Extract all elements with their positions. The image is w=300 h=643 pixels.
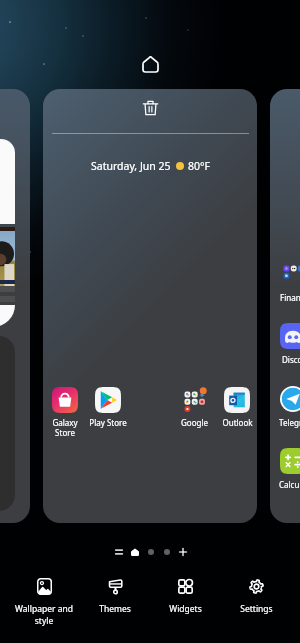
staticText: 80°F [188, 159, 210, 173]
button[interactable]: Calcula [271, 448, 300, 490]
button[interactable]: Remove page [43, 89, 257, 523]
button[interactable]: Financ [270, 89, 300, 523]
staticText: Disco [282, 354, 300, 365]
staticText: Google [181, 417, 208, 428]
button[interactable]: All pages [111, 544, 126, 559]
staticText: Financ [280, 292, 300, 303]
button[interactable]: Financ [271, 261, 300, 303]
button[interactable] [0, 89, 30, 523]
staticText: Wallpaper and style [15, 603, 73, 627]
button[interactable]: Page 3 [159, 544, 174, 559]
button[interactable]: Play Store [88, 387, 128, 428]
staticText: Settings [240, 603, 273, 615]
button[interactable]: Themes [79, 578, 151, 615]
button[interactable]: Page 2 [143, 544, 158, 559]
button[interactable]: Google [174, 387, 214, 428]
button[interactable]: Widgets [149, 578, 221, 615]
staticText: Saturday, Jun 25 [91, 159, 171, 173]
button[interactable]: Telegra [271, 386, 300, 428]
staticText: Telegra [279, 417, 300, 428]
button[interactable]: Remove page [134, 92, 166, 124]
staticText: Galaxy Store [52, 417, 78, 438]
staticText: Calcula [279, 479, 300, 490]
button[interactable]: Wallpaper and style [8, 578, 80, 627]
staticText: Play Store [89, 417, 127, 428]
staticText: Themes [99, 603, 131, 615]
button[interactable]: Disco [271, 323, 300, 365]
button[interactable]: Settings [220, 578, 292, 615]
staticText: Outlook [222, 417, 253, 428]
button[interactable]: Galaxy Store [45, 387, 85, 438]
button[interactable]: Outlook [217, 387, 257, 428]
button[interactable]: Home screen [134, 48, 166, 80]
staticText: Widgets [169, 603, 202, 615]
button[interactable]: Main home page [127, 544, 142, 559]
button[interactable]: Add page [175, 544, 190, 559]
